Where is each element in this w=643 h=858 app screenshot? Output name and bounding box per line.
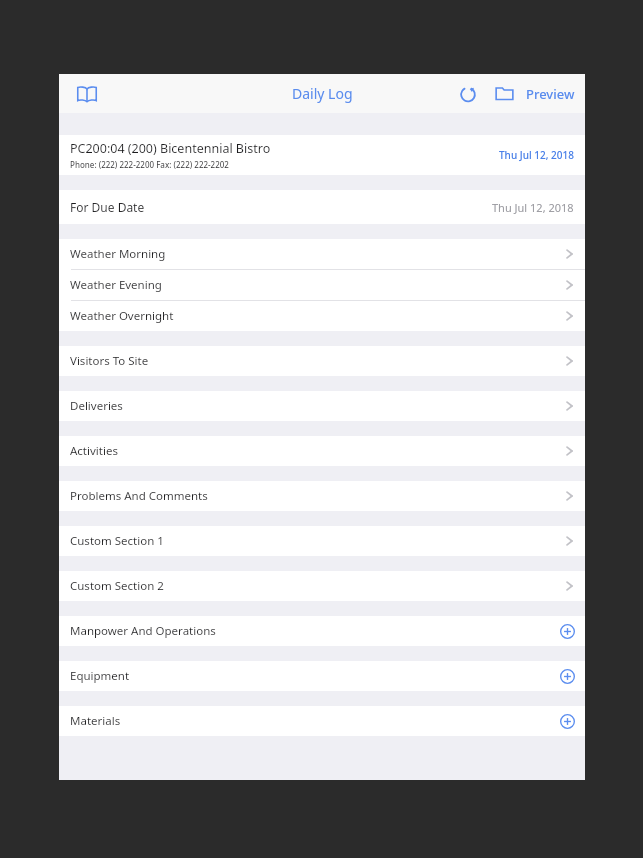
staticText: Activities xyxy=(70,443,118,459)
staticText: Materials xyxy=(70,713,121,729)
button[interactable]: Weather Overnight xyxy=(59,301,585,331)
staticText: For Due Date xyxy=(70,199,145,215)
button[interactable]: Visitors To Site xyxy=(59,346,585,376)
staticText: Visitors To Site xyxy=(70,353,149,369)
button[interactable]: Add Materials xyxy=(557,711,577,731)
staticText: Manpower And Operations xyxy=(70,623,216,639)
button[interactable]: Preview xyxy=(526,78,575,110)
staticText: Equipment xyxy=(70,668,130,684)
button[interactable]: Custom Section 1 xyxy=(59,526,585,556)
staticText: Thu Jul 12, 2018 xyxy=(492,200,574,215)
button[interactable]: Weather Evening xyxy=(59,270,585,300)
button[interactable]: Problems And Comments xyxy=(59,481,585,511)
staticText: Preview xyxy=(526,85,575,103)
button[interactable]: Activities xyxy=(59,436,585,466)
button[interactable]: Refresh xyxy=(452,78,484,110)
button[interactable]: Custom Section 2 xyxy=(59,571,585,601)
staticText: Thu Jul 12, 2018 xyxy=(499,148,574,162)
staticText: Custom Section 1 xyxy=(70,533,164,549)
button[interactable]: PC200:04 (200) Bicentennial Bistro xyxy=(59,135,585,175)
button[interactable]: Add Manpower And Operations xyxy=(557,621,577,641)
staticText: Weather Overnight xyxy=(70,308,174,324)
button[interactable]: Folder xyxy=(488,78,520,110)
staticText: PC200:04 (200) Bicentennial Bistro xyxy=(70,140,271,157)
button[interactable]: Library xyxy=(69,76,105,112)
staticText: Weather Morning xyxy=(70,246,166,262)
button[interactable]: Equipment xyxy=(59,661,585,691)
button[interactable]: Manpower And Operations xyxy=(59,616,585,646)
button[interactable]: Add Equipment xyxy=(557,666,577,686)
button[interactable]: Materials xyxy=(59,706,585,736)
staticText: Deliveries xyxy=(70,398,123,414)
button[interactable]: For Due Date xyxy=(59,190,585,224)
button[interactable]: Deliveries xyxy=(59,391,585,421)
staticText: Custom Section 2 xyxy=(70,578,164,594)
staticText: Phone: (222) 222-2200 Fax: (222) 222-220… xyxy=(70,159,229,170)
staticText: Problems And Comments xyxy=(70,488,208,504)
button[interactable]: Weather Morning xyxy=(59,239,585,269)
staticText: Weather Evening xyxy=(70,277,162,293)
staticText: Daily Log xyxy=(292,84,353,103)
